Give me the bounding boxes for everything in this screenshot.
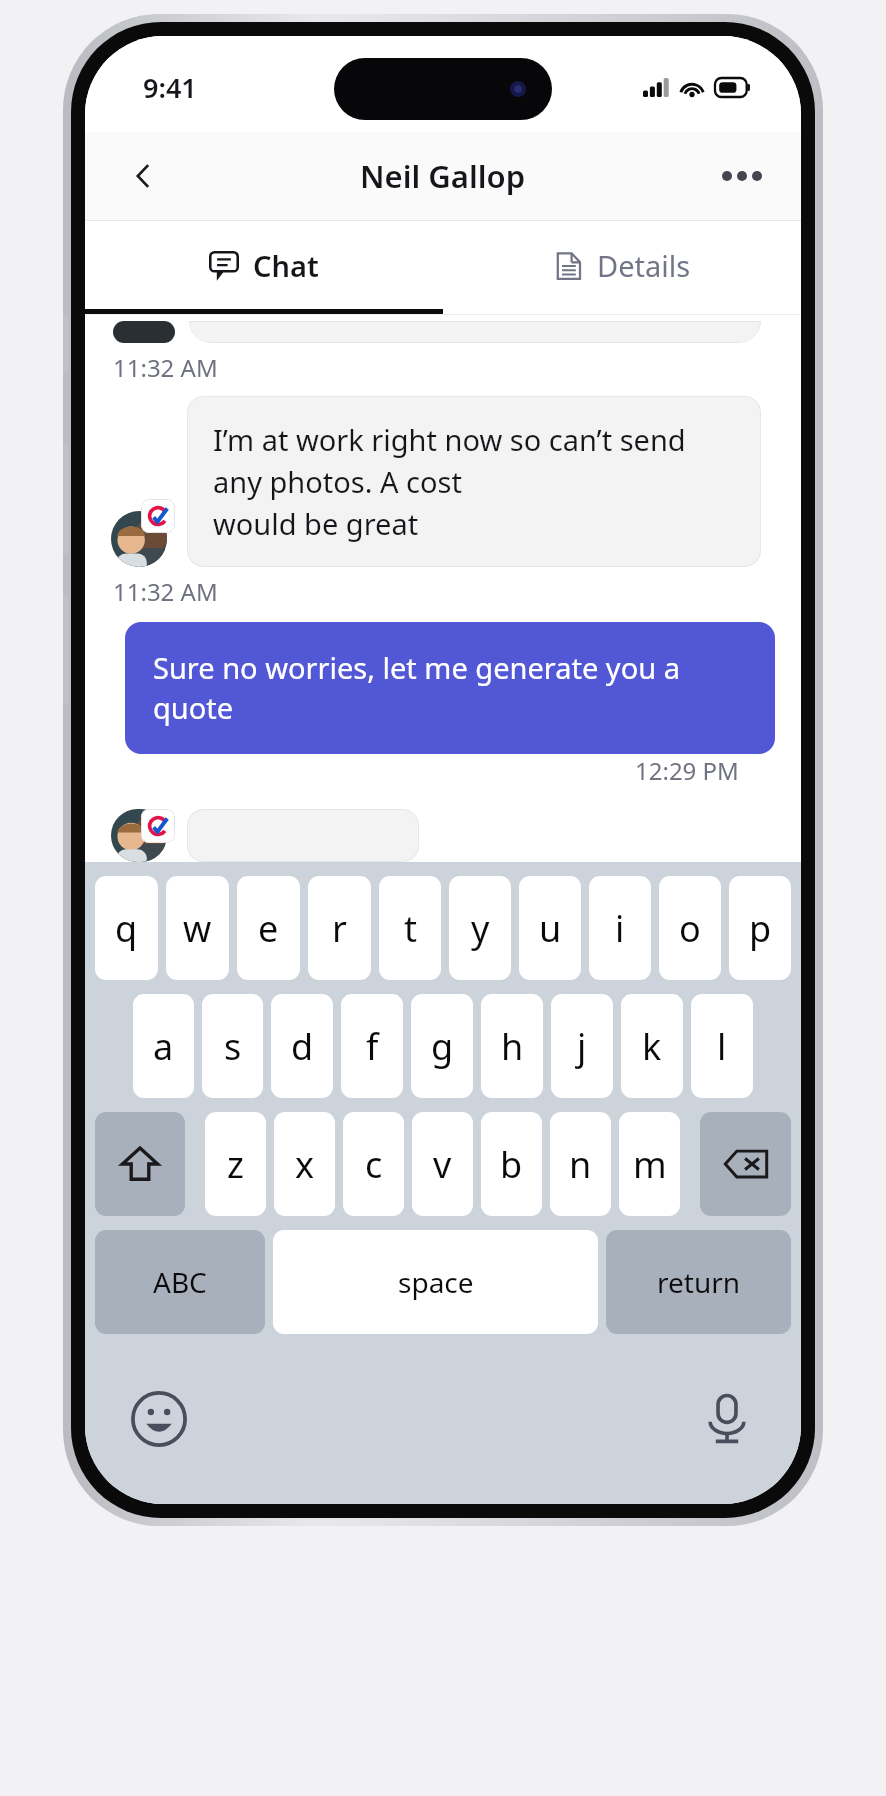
button[interactable]: h — [481, 994, 543, 1098]
staticText: u — [539, 904, 562, 953]
staticText: i — [615, 904, 625, 953]
staticText: a — [153, 1022, 174, 1071]
staticText: Neil Gallop — [360, 155, 526, 197]
button[interactable]: i — [589, 876, 651, 980]
button[interactable]: Back — [113, 145, 175, 207]
button[interactable]: p — [729, 876, 791, 980]
button[interactable]: space — [273, 1230, 598, 1334]
button[interactable]: o — [659, 876, 721, 980]
button[interactable]: Chat — [85, 221, 443, 309]
staticText: ABC — [153, 1263, 207, 1301]
button[interactable]: w — [166, 876, 229, 980]
staticText: t — [404, 904, 417, 953]
staticText: l — [717, 1022, 727, 1071]
staticText: g — [431, 1022, 454, 1071]
button[interactable]: ABC — [95, 1230, 265, 1334]
button[interactable]: Sounds good — [187, 809, 419, 862]
staticText: m — [633, 1140, 667, 1189]
button[interactable]: y — [449, 876, 511, 980]
button[interactable]: Backspace — [700, 1112, 791, 1216]
staticText: I’m at work right now so can’t send any … — [213, 420, 735, 543]
button[interactable]: v — [412, 1112, 473, 1216]
button[interactable]: Details — [443, 221, 801, 309]
staticText: n — [569, 1140, 592, 1189]
staticText: v — [433, 1140, 452, 1189]
staticText: q — [115, 904, 138, 953]
staticText: r — [332, 904, 347, 953]
button[interactable]: q — [95, 876, 158, 980]
staticText: h — [501, 1022, 524, 1071]
button[interactable]: j — [551, 994, 613, 1098]
staticText: p — [749, 904, 772, 953]
button[interactable]: f — [341, 994, 403, 1098]
staticText: x — [295, 1140, 315, 1189]
staticText: 11:32 AM — [113, 351, 218, 384]
staticText: f — [366, 1022, 379, 1071]
button[interactable]: Shift — [95, 1112, 185, 1216]
button[interactable]: I’m at work right now so can’t send any … — [187, 396, 761, 567]
staticText: e — [258, 904, 279, 953]
button[interactable]: z — [205, 1112, 266, 1216]
button[interactable]: More options — [711, 145, 773, 207]
button[interactable]: x — [274, 1112, 335, 1216]
staticText: 9:41 — [143, 69, 197, 106]
staticText: Details — [597, 246, 691, 285]
button[interactable]: a — [133, 994, 194, 1098]
button[interactable]: e — [237, 876, 300, 980]
staticText: y — [471, 904, 490, 953]
button[interactable]: u — [519, 876, 581, 980]
staticText: b — [500, 1140, 523, 1189]
button[interactable]: n — [550, 1112, 611, 1216]
button[interactable]: d — [271, 994, 333, 1098]
staticText: 12:29 PM — [635, 754, 739, 787]
button[interactable]: m — [619, 1112, 680, 1216]
staticText: 11:32 AM — [113, 575, 218, 608]
staticText: z — [227, 1140, 244, 1189]
button[interactable]: k — [621, 994, 683, 1098]
button[interactable]: Sure no worries, let me generate you a q… — [125, 622, 775, 754]
staticText: w — [183, 904, 212, 953]
staticText: space — [398, 1263, 474, 1301]
button[interactable]: r — [308, 876, 371, 980]
staticText: return — [657, 1263, 741, 1301]
staticText: j — [577, 1022, 587, 1071]
staticText: c — [365, 1140, 383, 1189]
button[interactable]: l — [691, 994, 753, 1098]
staticText: k — [642, 1022, 662, 1071]
button[interactable]: c — [343, 1112, 404, 1216]
button[interactable]: g — [411, 994, 473, 1098]
button[interactable]: Emoji — [125, 1385, 193, 1453]
staticText: Sure no worries, let me generate you a q… — [153, 648, 747, 728]
button[interactable]: Voice input — [693, 1385, 761, 1453]
button[interactable]: return — [606, 1230, 791, 1334]
button[interactable]: s — [202, 994, 263, 1098]
button[interactable]: t — [379, 876, 441, 980]
staticText: d — [291, 1022, 314, 1071]
staticText: o — [679, 904, 701, 953]
staticText: s — [224, 1022, 242, 1071]
button[interactable]: b — [481, 1112, 542, 1216]
staticText: Chat — [253, 246, 319, 285]
